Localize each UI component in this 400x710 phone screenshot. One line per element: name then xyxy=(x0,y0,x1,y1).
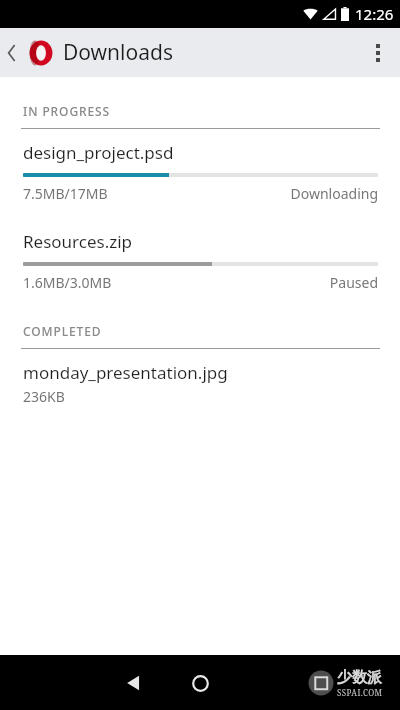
button[interactable]: Resources.zip xyxy=(0,230,400,292)
staticText: 12:26 xyxy=(355,4,394,24)
staticText: COMPLETED xyxy=(23,323,102,339)
button[interactable]: design_project.psd xyxy=(0,141,400,203)
button[interactable]: Opera xyxy=(26,38,56,68)
staticText: monday_presentation.jpg xyxy=(23,361,228,384)
staticText: Downloads xyxy=(63,38,173,67)
staticText: Downloading xyxy=(290,184,378,203)
staticText: Resources.zip xyxy=(23,230,133,253)
staticText: 少数派 xyxy=(337,668,382,687)
staticText: Paused xyxy=(329,273,378,292)
staticText: SSPAI.COM xyxy=(337,687,383,698)
button[interactable]: Back xyxy=(0,33,22,73)
button[interactable]: Home xyxy=(178,661,222,705)
staticText: design_project.psd xyxy=(23,141,174,164)
staticText: 7.5MB/17MB xyxy=(23,184,108,203)
button[interactable]: monday_presentation.jpg xyxy=(0,361,400,406)
button[interactable]: More options xyxy=(356,29,400,77)
button[interactable]: Back xyxy=(112,661,156,705)
staticText: IN PROGRESS xyxy=(23,103,111,119)
staticText: 1.6MB/3.0MB xyxy=(23,273,112,292)
staticText: 236KB xyxy=(23,387,65,406)
